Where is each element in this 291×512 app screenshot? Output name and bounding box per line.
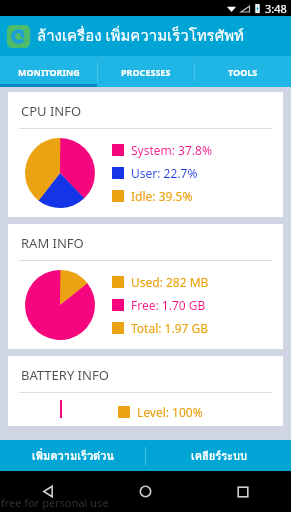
- staticText: Used: 282 MB: [131, 274, 209, 290]
- button[interactable]: RAM INFO: [8, 224, 283, 349]
- staticText: เพิ่มความเร็วด่วน: [32, 447, 114, 464]
- staticText: Free: 1.70 GB: [131, 297, 206, 313]
- staticText: Total: 1.97 GB: [131, 320, 209, 336]
- button[interactable]: App icon: [7, 25, 30, 48]
- staticText: BATTERY INFO: [21, 366, 109, 384]
- staticText: เคลียร์ระบบ: [191, 447, 247, 464]
- staticText: TOOLS: [228, 66, 258, 78]
- staticText: Level: 100%: [137, 404, 203, 420]
- button[interactable]: เพิ่มความเร็วด่วน: [0, 440, 145, 471]
- staticText: PROCESSES: [121, 66, 171, 78]
- staticText: ล้างเครื่อง เพิ่มความเร็วโทรศัพท์: [37, 24, 244, 48]
- staticText: RAM INFO: [21, 234, 84, 252]
- button[interactable]: CPU INFO: [8, 92, 283, 217]
- staticText: CPU INFO: [21, 102, 82, 120]
- button[interactable]: BATTERY INFO: [8, 356, 283, 426]
- button[interactable]: Back: [0, 471, 97, 512]
- staticText: 3:48: [265, 1, 287, 16]
- staticText: User: 22.7%: [131, 165, 198, 181]
- staticText: free for personal use: [1, 495, 109, 510]
- staticText: MONITORING: [18, 66, 80, 78]
- button[interactable]: TOOLS: [195, 56, 291, 87]
- staticText: System: 37.8%: [131, 142, 212, 158]
- button[interactable]: PROCESSES: [98, 56, 194, 87]
- button[interactable]: Recent apps: [194, 471, 291, 512]
- button[interactable]: เคลียร์ระบบ: [146, 440, 291, 471]
- button[interactable]: Home: [97, 471, 194, 512]
- staticText: Idle: 39.5%: [131, 188, 193, 204]
- button[interactable]: MONITORING: [0, 56, 97, 87]
